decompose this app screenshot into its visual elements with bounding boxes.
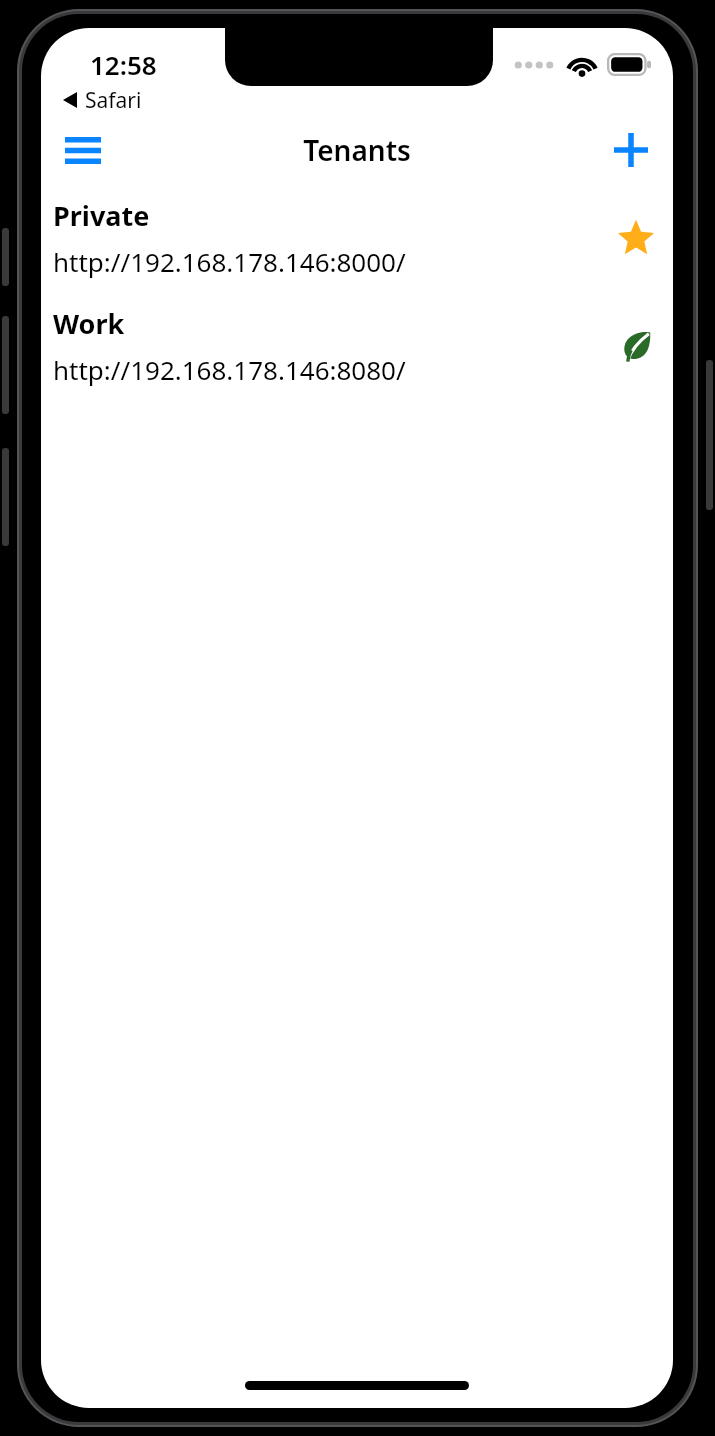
staticText: http://192.168.178.146:8000/ <box>53 244 406 279</box>
button[interactable]: Menu <box>55 122 111 178</box>
staticText: 12:58 <box>90 47 157 82</box>
button[interactable]: Private <box>41 197 673 279</box>
staticText: http://192.168.178.146:8080/ <box>53 352 406 387</box>
staticText: Safari <box>85 86 142 115</box>
staticText: Tenants <box>303 131 411 169</box>
button[interactable]: Add tenant <box>603 122 659 178</box>
button[interactable]: Safari <box>41 83 673 117</box>
staticText: Work <box>53 305 125 342</box>
staticText: Private <box>53 197 150 234</box>
button[interactable]: Work <box>41 305 673 387</box>
